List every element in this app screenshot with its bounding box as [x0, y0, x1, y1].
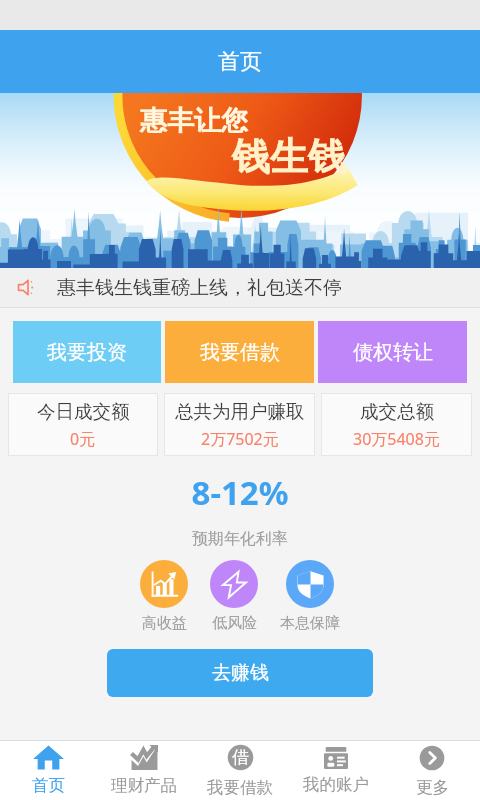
button[interactable]: 去赚钱	[107, 649, 373, 697]
button[interactable]: 理财产品	[96, 741, 192, 800]
button[interactable]: 今日成交额	[8, 393, 158, 456]
staticText: 今日成交额	[37, 400, 130, 423]
staticText: 总共为用户赚取	[175, 400, 305, 423]
button[interactable]: 成交总额	[321, 393, 472, 456]
staticText: 钱生钱	[232, 133, 346, 181]
staticText: 我的账户	[303, 774, 369, 795]
staticText: 惠丰钱生钱重磅上线，礼包送不停	[57, 276, 342, 300]
button[interactable]: 债权转让	[318, 321, 467, 383]
staticText: 高收益	[142, 614, 187, 633]
staticText: 预期年化利率	[0, 529, 480, 549]
button[interactable]: 我要借款	[165, 321, 314, 383]
staticText: 惠丰让您	[140, 104, 248, 138]
staticText: 8-12%	[0, 470, 480, 515]
button[interactable]: 我要借款	[192, 741, 288, 800]
button[interactable]: 我要投资	[13, 321, 161, 383]
button[interactable]: 更多	[384, 741, 480, 800]
button[interactable]: 本息保障	[280, 560, 340, 633]
staticText: 借	[232, 747, 249, 768]
staticText: 成交总额	[360, 400, 434, 423]
staticText: 我要借款	[200, 340, 280, 365]
button[interactable]: 惠丰钱生钱重磅上线，礼包送不停	[0, 268, 480, 307]
staticText: 首页	[32, 775, 65, 796]
staticText: 我要借款	[207, 777, 273, 798]
staticText: 本息保障	[280, 614, 340, 633]
staticText: 0元	[70, 428, 96, 450]
button[interactable]: 首页	[0, 741, 96, 800]
staticText: 我要投资	[47, 340, 127, 365]
button[interactable]: 总共为用户赚取	[164, 393, 315, 456]
staticText: 2万7502元	[201, 428, 279, 450]
staticText: 30万5408元	[353, 428, 440, 450]
button[interactable]: 低风险	[210, 560, 258, 633]
staticText: 债权转让	[353, 340, 433, 365]
staticText: 更多	[416, 777, 449, 798]
button[interactable]: 我的账户	[288, 741, 384, 800]
staticText: 首页	[218, 48, 262, 76]
staticText: 去赚钱	[212, 661, 269, 685]
staticText: 理财产品	[111, 775, 177, 796]
staticText: 低风险	[212, 614, 257, 633]
button[interactable]: 高收益	[140, 560, 188, 633]
